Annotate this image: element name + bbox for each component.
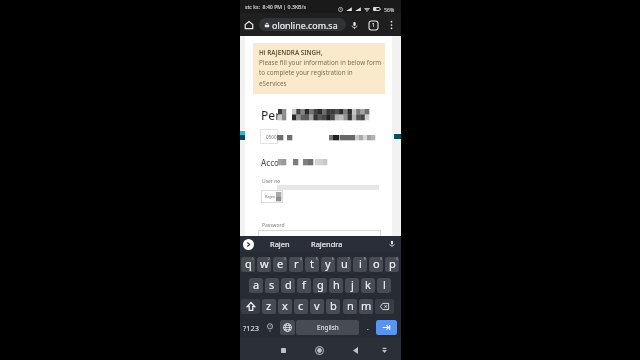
staticText: p xyxy=(389,257,396,271)
button[interactable]: k xyxy=(361,278,375,293)
button[interactable]: b xyxy=(326,299,340,314)
staticText: q xyxy=(245,257,252,271)
staticText: m xyxy=(361,299,372,313)
staticText: d xyxy=(285,278,292,292)
staticText: u xyxy=(341,257,348,271)
staticText: l xyxy=(383,278,386,292)
staticText: 9 xyxy=(380,257,382,261)
staticText: t xyxy=(310,257,314,271)
button[interactable]: ?123 xyxy=(241,320,260,335)
button[interactable]: l xyxy=(377,278,391,293)
button[interactable]: Rajendra xyxy=(307,237,347,251)
staticText: Rajen xyxy=(270,239,290,249)
staticText: Please fill your information in below fo… xyxy=(259,58,382,67)
button[interactable]: . xyxy=(360,320,376,335)
staticText: g xyxy=(317,278,324,292)
staticText: 1 xyxy=(252,257,254,261)
staticText: 1 xyxy=(372,22,375,29)
staticText: 0 xyxy=(396,257,398,261)
button[interactable]: z xyxy=(262,299,276,314)
staticText: Acco xyxy=(261,157,279,168)
button[interactable]: 3 xyxy=(273,257,287,272)
button[interactable]: Rajen xyxy=(266,237,294,251)
button[interactable]: Recent apps xyxy=(274,341,292,359)
button[interactable]: s xyxy=(265,278,279,293)
button[interactable]: 7 xyxy=(337,257,351,272)
button[interactable]: Change keyboard language xyxy=(280,320,295,335)
staticText: z xyxy=(266,299,272,313)
button[interactable]: h xyxy=(329,278,343,293)
staticText: a xyxy=(253,278,260,292)
button[interactable]: 5 xyxy=(305,257,319,272)
staticText: s xyxy=(269,278,275,292)
staticText: ?123 xyxy=(243,323,259,333)
button[interactable]: Emoji xyxy=(261,320,279,335)
button[interactable]: Home xyxy=(310,341,328,359)
staticText: 2 xyxy=(268,257,270,261)
staticText: olonline.com.sa xyxy=(272,19,338,31)
button[interactable]: Voice input xyxy=(386,238,398,250)
staticText: w xyxy=(260,257,269,271)
staticText: y xyxy=(325,257,331,271)
button[interactable]: c xyxy=(294,299,308,314)
staticText: 0500 xyxy=(266,134,277,140)
button[interactable]: Hide keyboard xyxy=(375,341,393,359)
button[interactable]: 6 xyxy=(321,257,335,272)
staticText: 3 xyxy=(284,257,286,261)
button[interactable]: j xyxy=(345,278,359,293)
staticText: n xyxy=(347,299,354,313)
button[interactable]: d xyxy=(281,278,295,293)
button[interactable]: olonline.com.sa xyxy=(259,18,346,31)
button[interactable]: Home xyxy=(241,17,257,33)
staticText: eServices xyxy=(259,79,287,88)
button[interactable]: a xyxy=(249,278,263,293)
staticText: i xyxy=(359,257,362,271)
button[interactable]: Voice search xyxy=(346,17,362,33)
staticText: 8 xyxy=(364,257,366,261)
button[interactable]: f xyxy=(297,278,311,293)
button[interactable]: Back xyxy=(346,341,364,359)
staticText: stc ks: 8:40 PM | 0.3KB/s xyxy=(245,3,306,10)
button[interactable]: More suggestions xyxy=(243,239,254,250)
button[interactable]: English xyxy=(296,320,359,335)
staticText: b xyxy=(330,299,337,313)
button[interactable]: 9 xyxy=(369,257,383,272)
staticText: Per xyxy=(261,107,281,123)
button[interactable]: Tabs xyxy=(365,17,381,33)
staticText: User no xyxy=(262,178,281,185)
staticText: Hi RAJENDRA SINGH, xyxy=(259,48,323,57)
button[interactable]: Backspace xyxy=(375,299,394,314)
button[interactable]: Enter xyxy=(376,320,397,335)
staticText: Rajendra xyxy=(311,239,343,249)
staticText: f xyxy=(302,278,306,292)
button[interactable]: g xyxy=(313,278,327,293)
staticText: 56% xyxy=(384,6,395,13)
button[interactable]: 4 xyxy=(289,257,303,272)
staticText: j xyxy=(351,278,354,292)
staticText: r xyxy=(294,257,299,271)
button[interactable]: 8 xyxy=(353,257,367,272)
staticText: 5 xyxy=(316,257,318,261)
button[interactable]: Shift xyxy=(241,299,260,314)
staticText: 7 xyxy=(348,257,350,261)
staticText: k xyxy=(365,278,371,292)
staticText: 6 xyxy=(332,257,334,261)
staticText: o xyxy=(373,257,380,271)
button[interactable]: More options xyxy=(384,18,398,32)
staticText: x xyxy=(282,299,288,313)
button[interactable]: n xyxy=(343,299,357,314)
button[interactable]: 2 xyxy=(257,257,271,272)
staticText: 4 xyxy=(300,257,302,261)
button[interactable]: v xyxy=(310,299,324,314)
button[interactable]: m xyxy=(359,299,373,314)
staticText: . xyxy=(367,324,369,332)
staticText: c xyxy=(298,299,304,313)
staticText: Rajen xyxy=(265,194,276,199)
button[interactable]: 0 xyxy=(385,257,399,272)
staticText: h xyxy=(333,278,340,292)
staticText: to complete your registration in xyxy=(259,68,353,77)
staticText: English xyxy=(317,323,339,332)
staticText: Password xyxy=(262,222,285,229)
button[interactable]: x xyxy=(278,299,292,314)
button[interactable]: 1 xyxy=(241,257,255,272)
